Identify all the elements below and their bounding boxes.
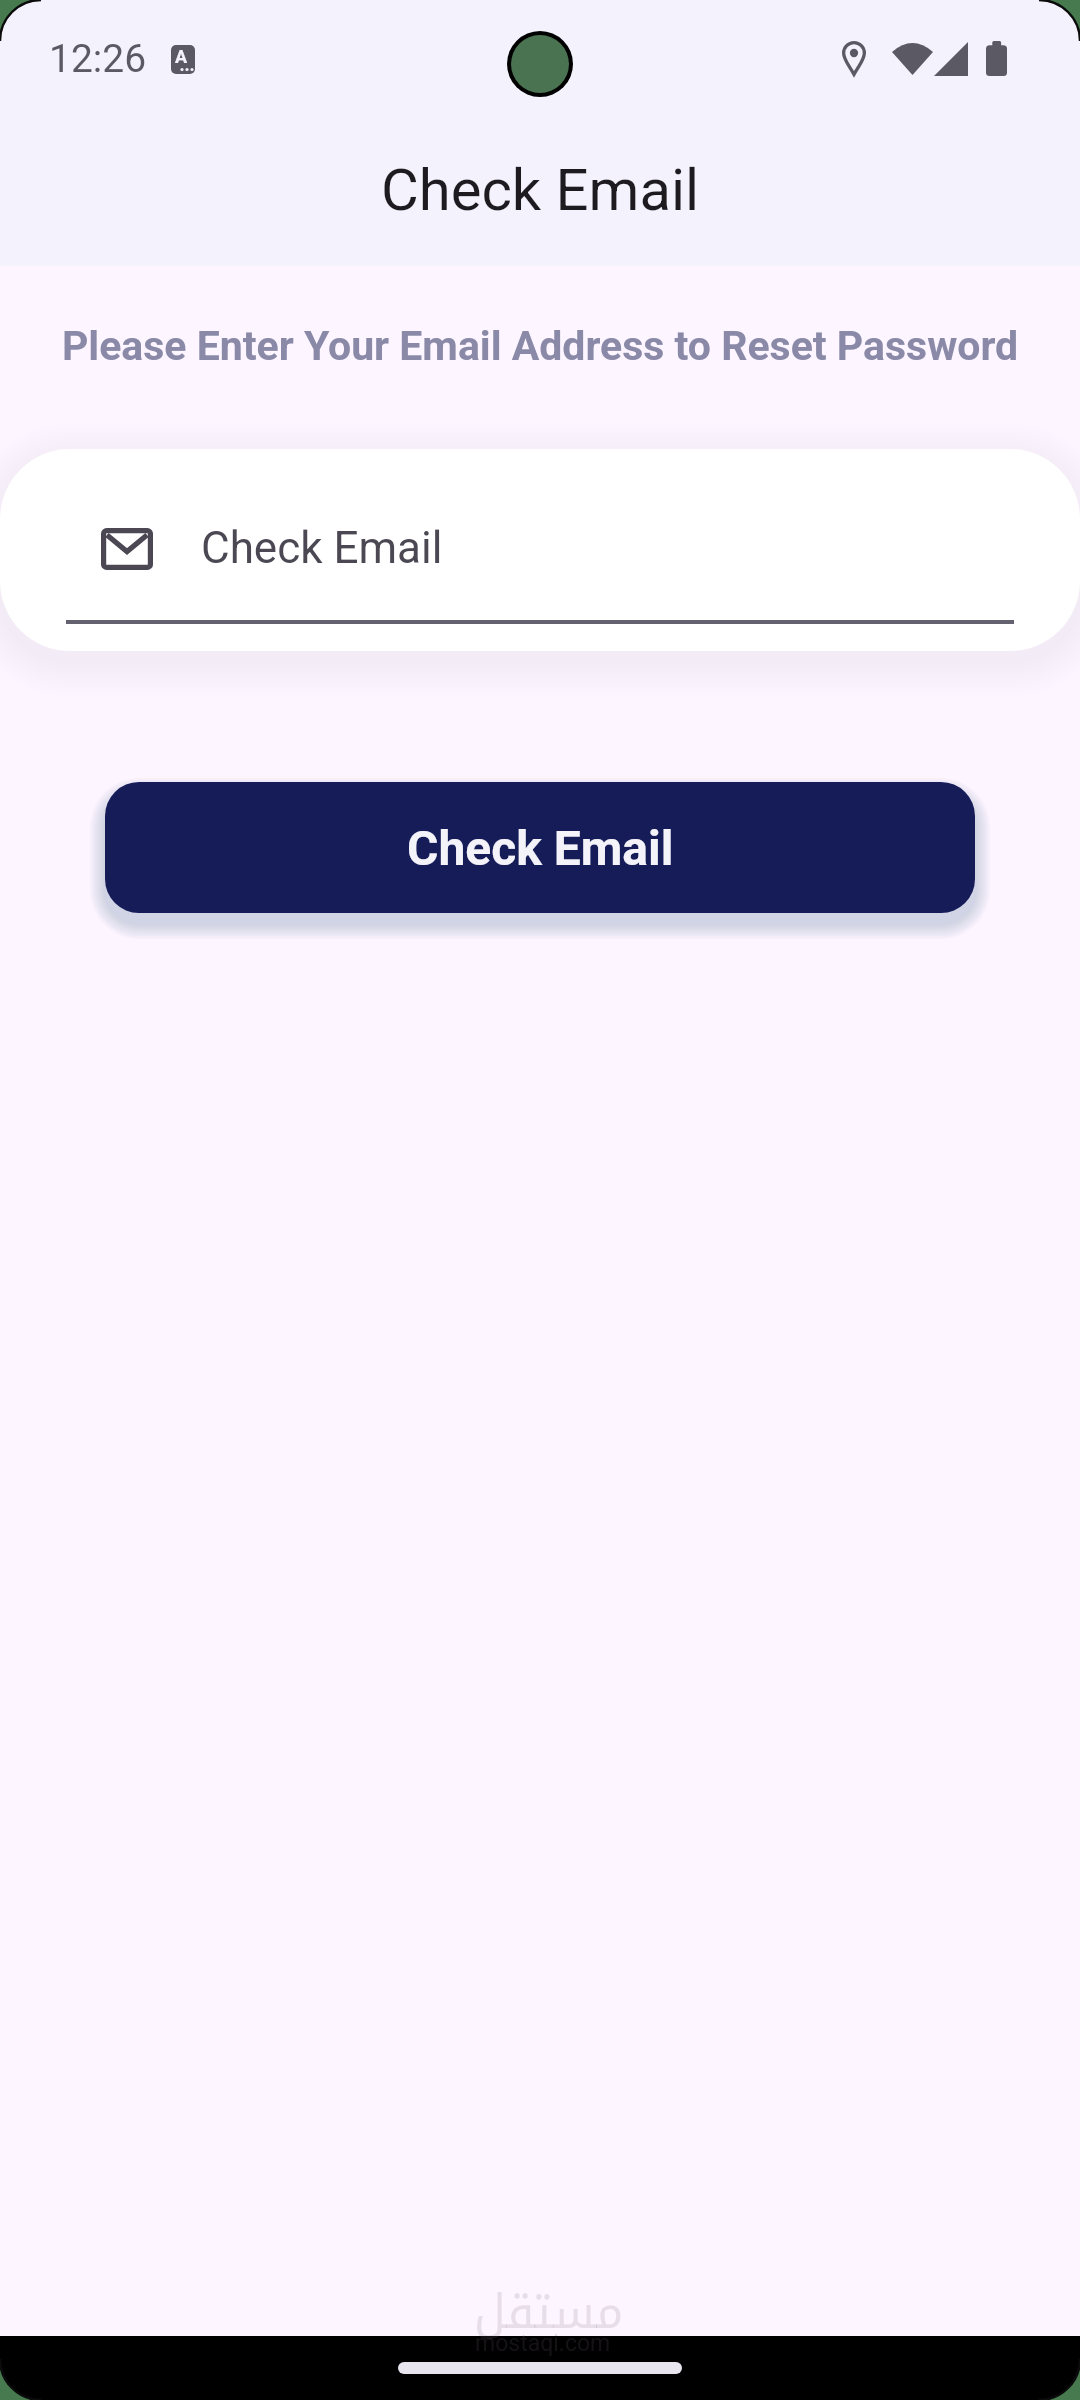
other: Wi-Fi xyxy=(892,42,933,75)
button[interactable]: Check Email xyxy=(105,782,975,913)
other: Location xyxy=(842,41,866,76)
staticText: A xyxy=(175,46,188,67)
staticText: Please Enter Your Email Address to Reset… xyxy=(0,322,1080,370)
staticText: Check Email xyxy=(381,156,700,224)
staticText: Check Email xyxy=(407,820,674,876)
button[interactable]: Email address input xyxy=(0,449,1080,651)
staticText: مستقل xyxy=(474,2268,624,2357)
staticText: mostaqi.com xyxy=(475,2330,611,2357)
staticText: 12:26 xyxy=(49,36,147,82)
other: Battery xyxy=(986,41,1007,76)
staticText: Check Email xyxy=(201,522,443,574)
other: Mobile signal xyxy=(934,42,968,76)
